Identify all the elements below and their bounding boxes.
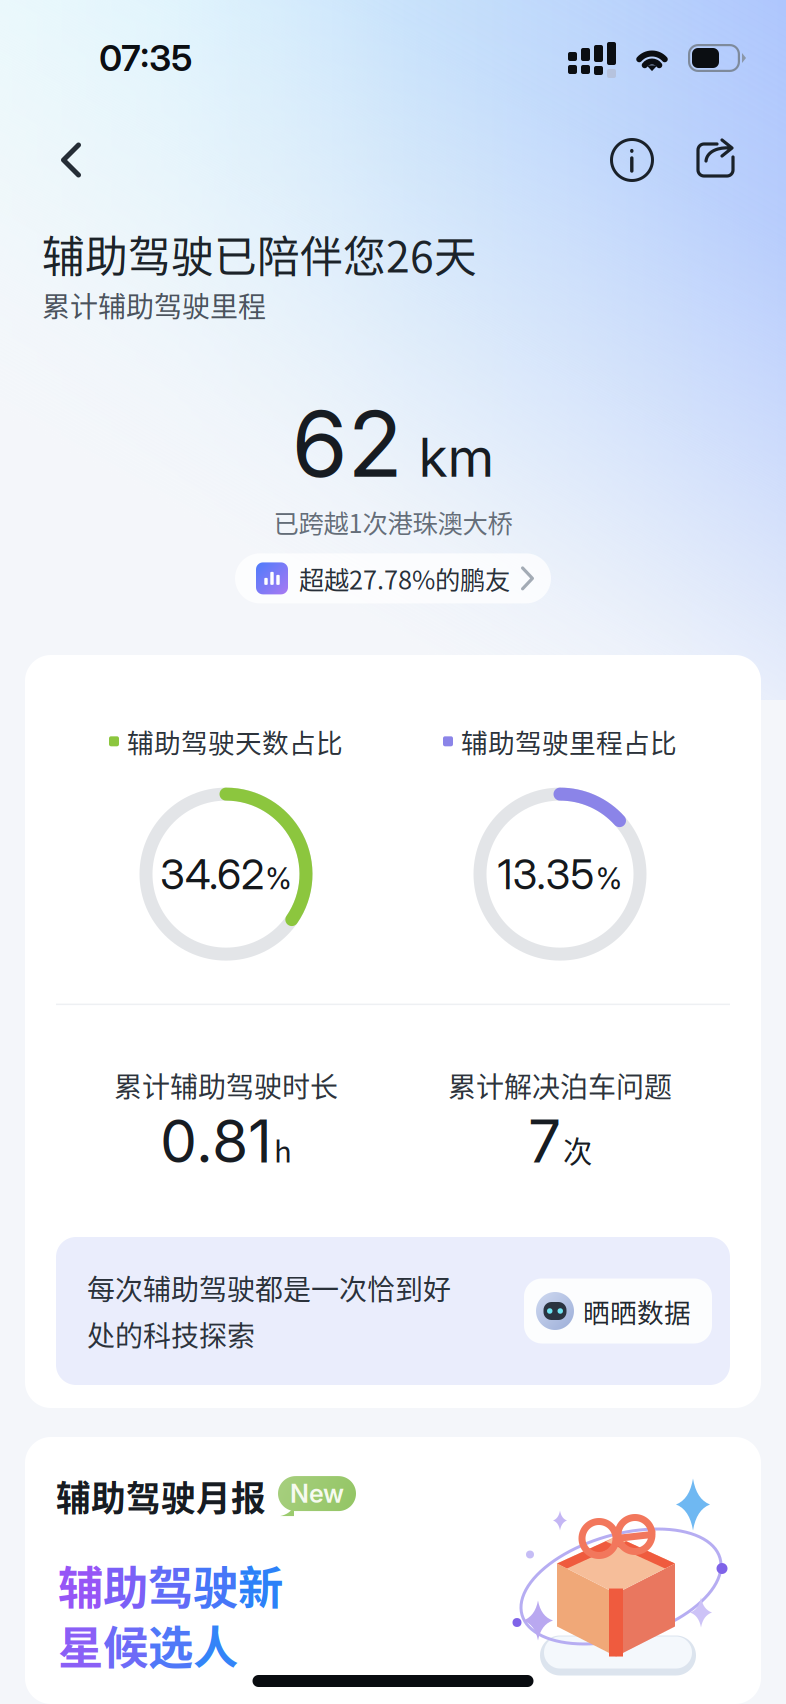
staticText: 辅助驾驶天数占比 [127,722,343,761]
staticText: h [274,1128,292,1171]
staticText: 07:35 [99,36,193,80]
staticText: 62 [291,389,402,499]
staticText: 处的科技探索 [87,1314,255,1354]
staticText: 34.62 [160,849,264,899]
button[interactable]: 超越27.78%的鹏友 [235,553,551,603]
staticText: 辅助驾驶已陪伴您26天 [42,223,477,285]
staticText: 人 [193,1612,238,1677]
staticText: 超越27.78%的鹏友 [299,560,510,597]
button[interactable]: Share [687,124,745,196]
staticText: 选 [148,1612,193,1677]
button[interactable]: Back [40,124,102,196]
staticText: % [265,861,292,896]
staticText: 13.35 [497,849,594,899]
staticText: 驾 [148,1552,193,1618]
staticText: 新 [238,1552,283,1618]
staticText: 候 [103,1612,148,1677]
staticText: 0.81 [160,1106,272,1177]
staticText: 驶 [193,1552,238,1618]
staticText: 辅助驾驶月报 [56,1471,266,1521]
staticText: % [595,861,622,896]
staticText: km [418,425,494,490]
staticText: 7 [528,1106,561,1177]
staticText: 累计辅助驾驶里程 [42,285,266,325]
staticText: New [290,1478,344,1509]
staticText: 助 [103,1552,148,1618]
staticText: 已跨越1次港珠澳大桥 [273,504,512,540]
button[interactable]: 晒晒数据 [524,1278,712,1343]
staticText: 累计解决泊车问题 [448,1065,672,1106]
staticText: 辅助驾驶里程占比 [461,722,677,761]
staticText: 每次辅助驾驶都是一次恰到好 [87,1267,451,1308]
staticText: 晒晒数据 [583,1292,691,1330]
staticText: 辅 [58,1552,103,1618]
staticText: 星 [58,1612,103,1677]
staticText: 次 [563,1128,592,1171]
staticText: 累计辅助驾驶时长 [114,1065,338,1106]
button[interactable]: Information [603,124,661,196]
